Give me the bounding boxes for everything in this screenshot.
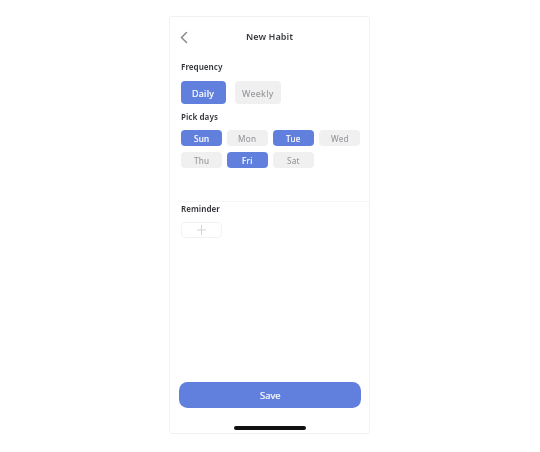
button[interactable]: Weekly	[235, 81, 281, 104]
staticText: Wed	[331, 133, 349, 144]
button[interactable]: Save	[179, 382, 361, 408]
button[interactable]: Daily	[181, 81, 226, 104]
button[interactable]: Add reminder	[181, 222, 222, 238]
staticText: New Habit	[246, 30, 294, 42]
staticText: Weekly	[242, 87, 274, 99]
button[interactable]: Sun	[181, 130, 222, 146]
button[interactable]: Mon	[227, 130, 268, 146]
staticText: Tue	[286, 133, 301, 144]
staticText: Save	[260, 389, 281, 402]
staticText: Thu	[194, 155, 210, 166]
button[interactable]: Back	[173, 26, 195, 48]
staticText: Sat	[287, 155, 300, 166]
staticText: Pick days	[181, 111, 218, 122]
button[interactable]: Tue	[273, 130, 314, 146]
button[interactable]: Fri	[227, 152, 268, 168]
staticText: Daily	[192, 87, 215, 99]
staticText: Mon	[238, 133, 257, 144]
staticText: Fri	[242, 155, 253, 166]
button[interactable]: Thu	[181, 152, 222, 168]
button[interactable]: Wed	[319, 130, 360, 146]
staticText: Sun	[194, 133, 210, 144]
staticText: Reminder	[181, 203, 220, 214]
button[interactable]: Sat	[273, 152, 314, 168]
staticText: Frequency	[181, 61, 223, 72]
